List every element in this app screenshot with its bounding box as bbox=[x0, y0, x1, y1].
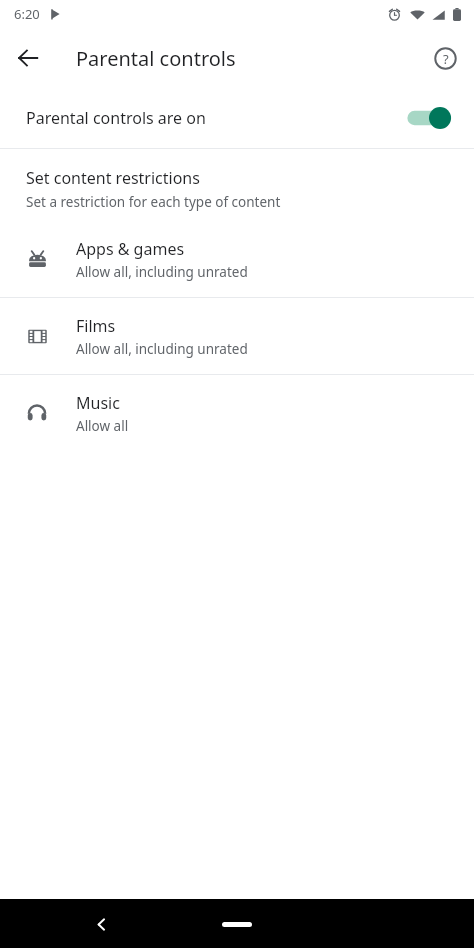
button[interactable]: Apps & games bbox=[0, 221, 474, 297]
button[interactable]: Parental controls are on bbox=[0, 88, 474, 148]
staticText: Allow all bbox=[76, 417, 129, 435]
button[interactable]: Back bbox=[8, 38, 48, 78]
staticText: 6:20 bbox=[14, 5, 40, 23]
button[interactable]: Help bbox=[425, 38, 465, 78]
button[interactable]: Films bbox=[0, 298, 474, 374]
other: Parental controls toggle bbox=[406, 106, 452, 130]
staticText: Parental controls bbox=[76, 45, 236, 72]
button[interactable]: Home bbox=[207, 911, 267, 937]
staticText: Allow all, including unrated bbox=[76, 340, 248, 358]
staticText: Set a restriction for each type of conte… bbox=[26, 193, 281, 211]
staticText: Parental controls are on bbox=[26, 107, 406, 129]
button[interactable]: Music bbox=[0, 375, 474, 451]
staticText: Allow all, including unrated bbox=[76, 263, 248, 281]
staticText: Films bbox=[76, 315, 116, 337]
button[interactable]: Back bbox=[84, 907, 118, 941]
staticText: Set content restrictions bbox=[26, 167, 200, 189]
staticText: Music bbox=[76, 392, 120, 414]
staticText: Apps & games bbox=[76, 238, 185, 260]
staticText: ? bbox=[443, 50, 449, 68]
